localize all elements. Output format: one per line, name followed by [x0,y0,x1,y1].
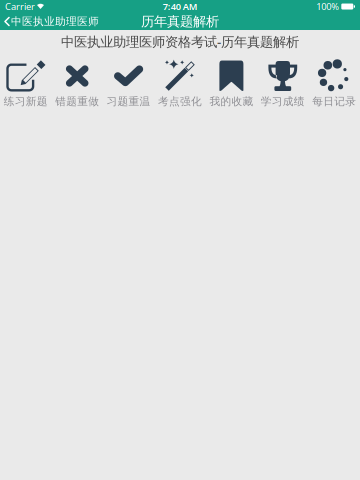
staticText: 中医执业助理医师 [11,15,99,28]
button[interactable]: 我的收藏 [206,60,257,107]
button[interactable]: 练习新题 [0,60,51,107]
staticText: Carrier [5,0,35,13]
staticText: 7:40 AM [163,0,198,13]
staticText: 我的收藏 [209,95,253,108]
staticText: 习题重温 [107,95,151,108]
staticText: 每日记录 [312,95,356,108]
button[interactable]: 错题重做 [51,60,103,107]
staticText: 中医执业助理医师资格考试-历年真题解析 [61,33,299,50]
staticText: 考点强化 [158,95,202,108]
button[interactable]: 中医执业助理医师 [0,13,104,30]
staticText: 练习新题 [4,95,48,108]
button[interactable]: 学习成绩 [257,60,308,107]
button[interactable]: 考点强化 [154,60,206,107]
staticText: 学习成绩 [261,95,305,108]
button[interactable]: 习题重温 [103,60,154,107]
staticText: 历年真题解析 [141,13,219,30]
staticText: 100% [316,0,339,13]
button[interactable]: 每日记录 [308,60,360,107]
staticText: 错题重做 [55,95,99,108]
